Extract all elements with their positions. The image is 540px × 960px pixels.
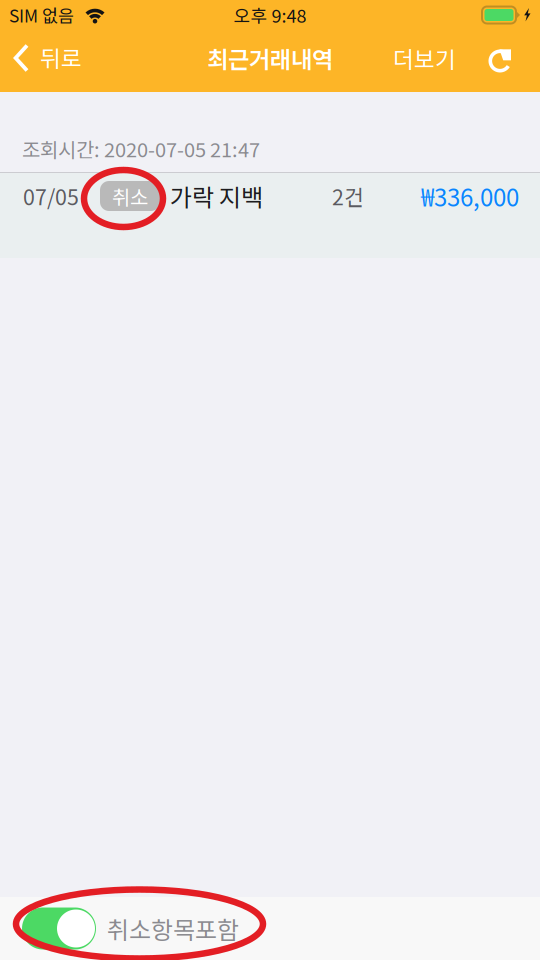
staticText: 더보기 [393,42,456,74]
staticText: 조회시간: 2020-07-05 21:47 [22,134,260,163]
staticText: ₩336,000 [421,179,519,213]
staticText: 오후 9:48 [233,2,306,28]
staticText: SIM 없음 [9,2,74,28]
staticText: 07/05 [23,181,79,211]
staticText: 가락 지백 [170,179,263,213]
button[interactable]: 더보기 [381,37,468,85]
staticText: 취소항목포함 [107,911,239,946]
button[interactable]: 취소항목포함 [0,897,255,959]
staticText: 최근거래내역 [207,41,333,75]
staticText: 뒤로 [40,41,82,73]
staticText: 취소 [112,181,148,210]
staticText: 2건 [332,181,364,211]
button[interactable]: 뒤로 [0,38,94,84]
button[interactable]: 새로고침 [468,42,523,79]
